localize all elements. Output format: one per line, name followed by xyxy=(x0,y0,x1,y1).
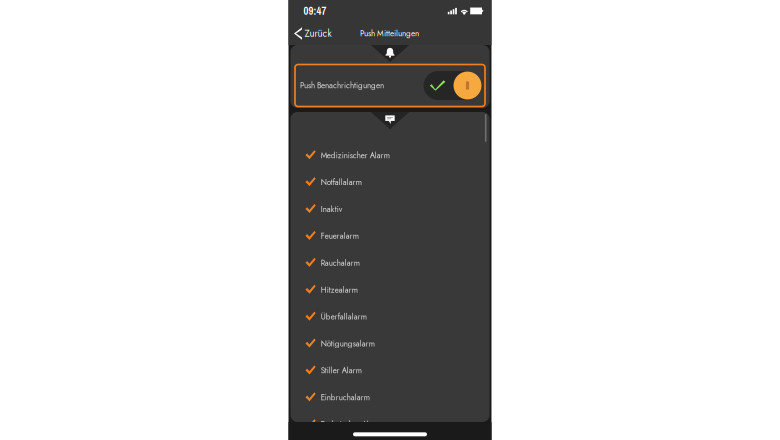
staticText: 09:47 xyxy=(303,4,326,18)
button[interactable]: Push Benachrichtigungen xyxy=(295,64,485,106)
button[interactable]: Medizinischer Alarm xyxy=(290,142,489,169)
staticText: Zurück xyxy=(304,27,331,40)
button[interactable]: Technischer Alarm xyxy=(290,411,489,438)
button[interactable]: Einbruchalarm xyxy=(290,384,489,411)
button[interactable]: Überfallalarm xyxy=(290,303,489,330)
button[interactable]: Rauchalarm xyxy=(290,249,489,276)
staticText: Inaktiv xyxy=(321,203,343,215)
staticText: Hitzealarm xyxy=(321,284,358,296)
staticText: Stiller Alarm xyxy=(321,365,362,376)
staticText: Überfallalarm xyxy=(321,311,367,323)
button[interactable]: Hitzealarm xyxy=(290,276,489,303)
button[interactable]: Nötigungsalarm xyxy=(290,330,489,357)
staticText: Push Mitteilungen xyxy=(360,28,419,39)
button[interactable]: Inaktiv xyxy=(290,196,489,223)
staticText: Rauchalarm xyxy=(321,257,360,269)
staticText: Medizinischer Alarm xyxy=(321,150,390,161)
staticText: Technischer Alarm xyxy=(321,419,382,430)
button[interactable]: Stiller Alarm xyxy=(290,357,489,384)
button[interactable]: Zurück xyxy=(288,22,337,45)
staticText: Push Benachrichtigungen xyxy=(300,80,384,91)
staticText: Feueralarm xyxy=(321,230,359,242)
staticText: Notfallalarm xyxy=(321,176,362,188)
staticText: Einbruchalarm xyxy=(321,392,370,403)
staticText: Nötigungsalarm xyxy=(321,338,375,349)
button[interactable]: Notfallalarm xyxy=(290,169,489,196)
button[interactable]: Feueralarm xyxy=(290,223,489,249)
button[interactable]: Push Benachrichtigungen ein xyxy=(423,71,481,100)
